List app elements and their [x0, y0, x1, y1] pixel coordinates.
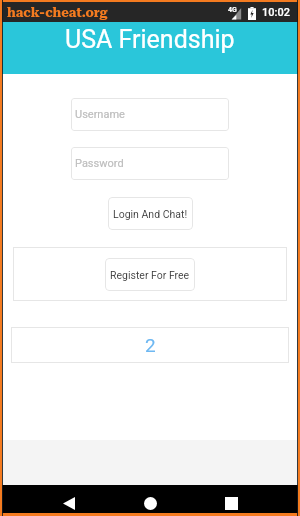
staticText: 4G	[228, 6, 237, 14]
button[interactable]: Username	[71, 98, 229, 131]
button[interactable]: 2	[11, 327, 289, 363]
button[interactable]: Password	[71, 147, 229, 180]
staticText: hack-cheat.org	[7, 5, 108, 20]
staticText: USA Friendship	[65, 25, 235, 54]
staticText: 2	[145, 334, 156, 356]
button[interactable]: Back	[56, 494, 82, 512]
staticText: 10:02	[262, 6, 290, 19]
staticText: Login And Chat!	[113, 208, 188, 220]
staticText: Password	[75, 157, 124, 170]
button[interactable]: Recents	[218, 494, 244, 512]
button[interactable]: Login And Chat!	[108, 197, 193, 230]
button[interactable]: Register For Free	[105, 258, 195, 291]
staticText: Username	[75, 108, 125, 121]
staticText: Register For Free	[110, 269, 190, 281]
button[interactable]: Home	[137, 494, 163, 512]
